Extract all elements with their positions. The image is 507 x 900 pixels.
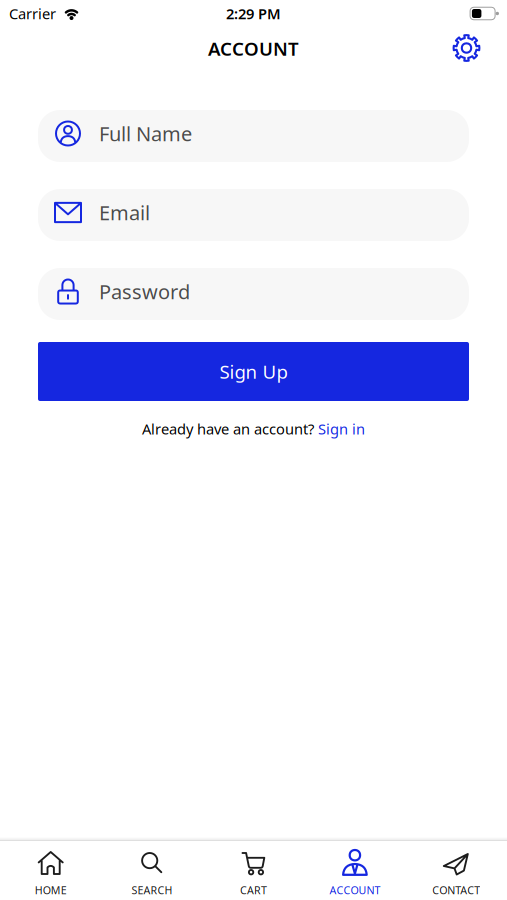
- button[interactable]: HOME: [0, 850, 101, 897]
- button[interactable]: Full Name: [38, 110, 469, 162]
- staticText: CONTACT: [432, 883, 480, 897]
- staticText: Sign in: [318, 419, 365, 438]
- staticText: ACCOUNT: [208, 36, 299, 61]
- staticText: CART: [240, 883, 267, 897]
- staticText: HOME: [35, 883, 67, 897]
- staticText: Password: [99, 278, 190, 305]
- button[interactable]: CONTACT: [406, 850, 507, 897]
- button[interactable]: ACCOUNT: [304, 850, 406, 897]
- button[interactable]: Sign in: [318, 419, 365, 438]
- button[interactable]: CART: [203, 850, 304, 897]
- staticText: SEARCH: [132, 883, 173, 897]
- button[interactable]: Email: [38, 189, 469, 241]
- button[interactable]: Password: [38, 268, 469, 320]
- button[interactable]: Sign Up: [38, 342, 469, 401]
- staticText: Carrier: [9, 4, 56, 23]
- staticText: ACCOUNT: [329, 883, 380, 897]
- button[interactable]: SEARCH: [101, 850, 203, 897]
- staticText: Already have an account?: [142, 419, 314, 438]
- staticText: 2:29 PM: [226, 4, 281, 23]
- staticText: Sign Up: [219, 359, 287, 384]
- staticText: Full Name: [99, 120, 192, 147]
- button[interactable]: Settings: [453, 34, 480, 61]
- staticText: Email: [99, 199, 150, 226]
